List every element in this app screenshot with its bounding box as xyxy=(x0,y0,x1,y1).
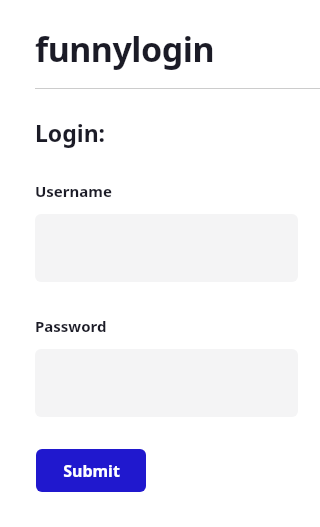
staticText: Username xyxy=(35,181,112,201)
staticText: Login: xyxy=(35,117,106,148)
staticText: funnylogin xyxy=(35,26,215,72)
staticText: Submit xyxy=(63,460,120,482)
button[interactable]: Submit xyxy=(36,449,146,492)
staticText: Password xyxy=(35,316,107,336)
